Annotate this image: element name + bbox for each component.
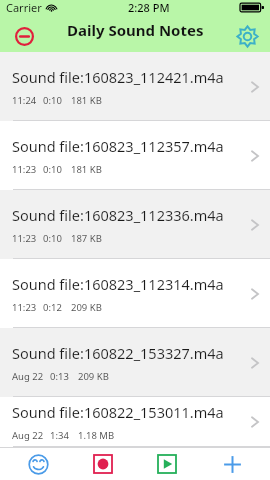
button[interactable]: Sound file:160822_153011.m4a — [0, 397, 270, 447]
button[interactable]: Record — [77, 449, 129, 479]
staticText: 0:10 — [43, 163, 62, 176]
button[interactable]: Sound file:160823_112421.m4a — [0, 52, 270, 121]
button[interactable]: Play — [141, 449, 193, 479]
staticText: 0:10 — [43, 232, 62, 245]
staticText: 11:23 — [12, 232, 37, 245]
button[interactable]: Stop — [10, 22, 38, 50]
staticText: 209 KB — [71, 301, 102, 314]
staticText: Sound file:160822_153327.m4a — [12, 343, 224, 363]
button[interactable]: Sound file:160823_112336.m4a — [0, 190, 270, 259]
staticText: 1.18 MB — [78, 429, 115, 442]
staticText: Sound file:160823_112357.m4a — [12, 136, 224, 156]
staticText: 187 KB — [71, 232, 102, 245]
button[interactable]: Settings — [232, 21, 262, 51]
staticText: 181 KB — [71, 94, 102, 107]
staticText: 0:12 — [43, 301, 62, 314]
staticText: 181 KB — [71, 163, 102, 176]
button[interactable]: Sound file:160823_112357.m4a — [0, 121, 270, 190]
staticText: 0:10 — [43, 94, 62, 107]
staticText: 11:23 — [12, 163, 37, 176]
staticText: Sound file:160823_112314.m4a — [12, 274, 224, 294]
staticText: Daily Sound Notes — [67, 20, 204, 40]
staticText: 2:28 PM — [128, 0, 170, 15]
staticText: Sound file:160823_112336.m4a — [12, 205, 224, 225]
staticText: Sound file:160823_112421.m4a — [12, 67, 224, 87]
button[interactable]: Sound file:160822_153327.m4a — [0, 328, 270, 397]
staticText: 11:24 — [12, 94, 37, 107]
staticText: Aug 22 — [12, 370, 44, 383]
staticText: 1:34 — [50, 429, 69, 442]
staticText: Aug 22 — [12, 429, 44, 442]
staticText: 209 KB — [78, 370, 109, 383]
staticText: Sound file:160822_153011.m4a — [12, 402, 224, 422]
staticText: Carrier — [6, 0, 42, 15]
staticText: 11:23 — [12, 301, 37, 314]
button[interactable]: Sound file:160823_112314.m4a — [0, 259, 270, 328]
button[interactable]: Smiley — [12, 449, 64, 479]
button[interactable]: Add — [206, 449, 258, 479]
staticText: 0:13 — [50, 370, 69, 383]
